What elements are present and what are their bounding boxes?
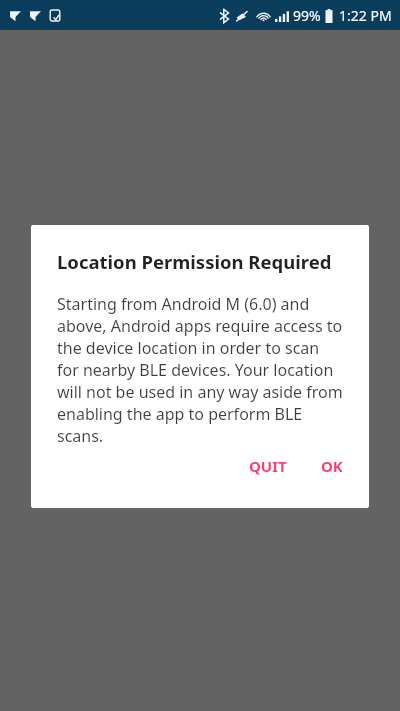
button[interactable]: QUIT	[239, 450, 297, 482]
staticText: Starting from Android M (6.0) and above,…	[57, 293, 345, 447]
staticText: Location Permission Required	[57, 249, 332, 274]
staticText: 99%	[293, 6, 321, 25]
staticText: OK	[321, 456, 343, 476]
button[interactable]: OK	[311, 450, 353, 482]
staticText: 1:22 PM	[339, 6, 392, 25]
staticText: QUIT	[249, 456, 287, 476]
